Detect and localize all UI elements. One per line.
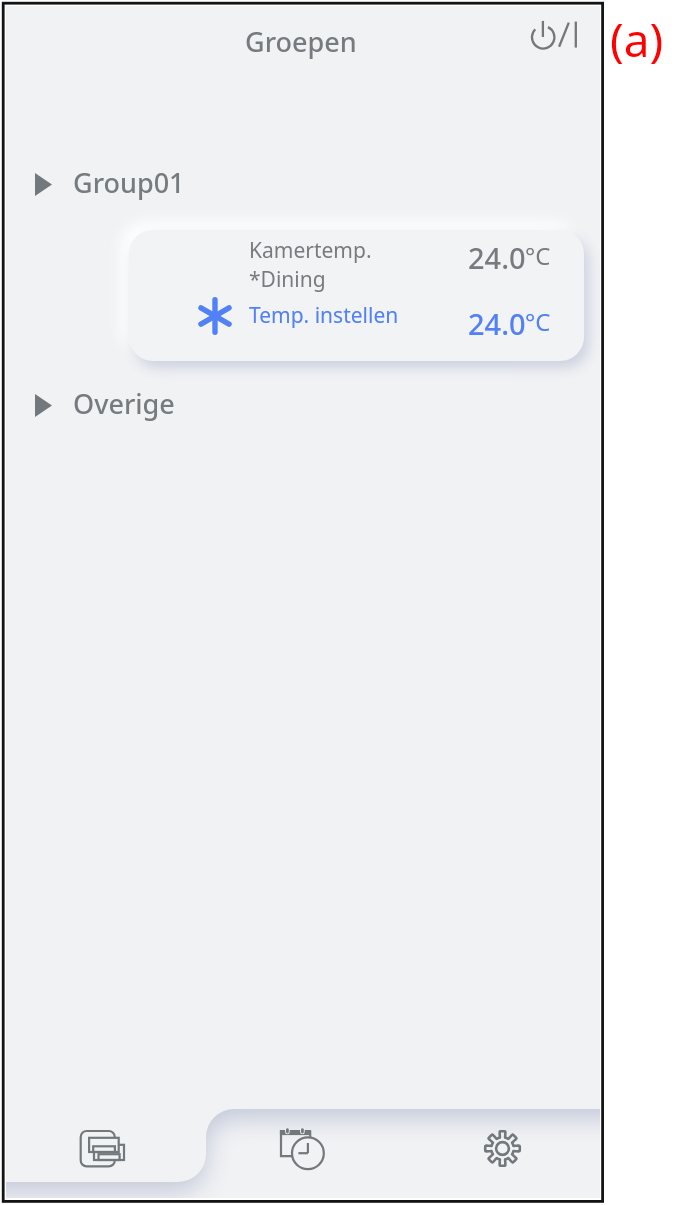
button[interactable]: Settings [402, 1092, 600, 1198]
staticText: Temp. instellen [249, 301, 399, 330]
button[interactable]: Groups [6, 1092, 204, 1198]
staticText: 24.0 [468, 238, 526, 277]
button[interactable]: Kamertemp. [129, 230, 584, 361]
staticText: Group01 [73, 164, 185, 201]
button[interactable]: Overige [6, 382, 600, 428]
staticText: Groepen [245, 23, 357, 60]
staticText: Kamertemp. [249, 236, 372, 265]
staticText: Overige [73, 385, 175, 422]
button[interactable]: Power on off [520, 6, 588, 59]
staticText: °C [525, 305, 551, 338]
staticText: 24.0 [468, 304, 526, 343]
staticText: °C [525, 239, 551, 272]
button[interactable]: Schedule [204, 1092, 402, 1198]
button[interactable]: Group01 [6, 161, 600, 207]
staticText: (a) [610, 8, 664, 71]
staticText: *Dining [249, 265, 326, 294]
